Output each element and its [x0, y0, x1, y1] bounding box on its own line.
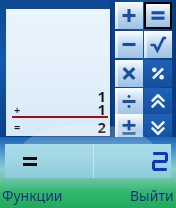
button[interactable]: Plus minus [115, 114, 143, 141]
button[interactable]: Percent [144, 60, 172, 87]
button[interactable]: Multiply [115, 60, 143, 87]
button[interactable]: Scroll down [144, 114, 172, 141]
button[interactable]: 1 [6, 9, 110, 136]
button[interactable]: Divide [115, 88, 143, 115]
button[interactable]: Minus [115, 31, 143, 58]
staticText: 1 [92, 99, 106, 119]
button[interactable]: Scroll up [144, 88, 172, 115]
staticText: Выйти [130, 186, 174, 205]
staticText: = [14, 119, 21, 134]
button[interactable]: Функции [0, 182, 88, 208]
staticText: 2 [92, 117, 106, 137]
button[interactable] [5, 144, 171, 178]
button[interactable]: Plus [115, 2, 143, 29]
staticText: 1 [92, 86, 106, 106]
button[interactable]: Equals [144, 2, 172, 29]
button[interactable]: Square root [144, 31, 172, 58]
button[interactable]: Выйти [88, 182, 176, 208]
staticText: Функции [2, 186, 63, 205]
staticText: + [14, 102, 21, 117]
